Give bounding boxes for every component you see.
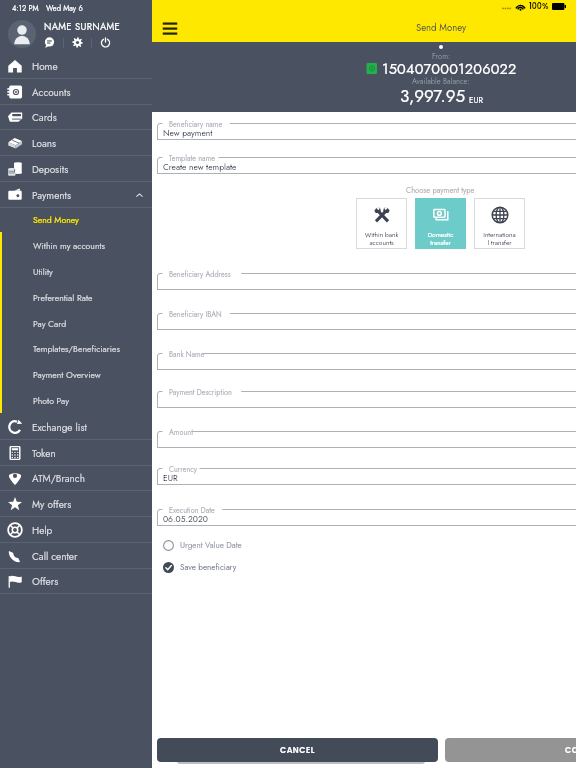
- staticText: Offers: [32, 574, 144, 588]
- staticText: Internationa l transfer: [474, 230, 525, 247]
- staticText: Templates/Beneficiaries: [33, 343, 120, 356]
- staticText: Save beneficiary: [180, 561, 237, 573]
- staticText: EUR: [163, 472, 178, 484]
- staticText: ATM/Branch: [32, 471, 144, 485]
- button[interactable]: Exchange list: [0, 414, 152, 440]
- button[interactable]: Send Money: [0, 207, 152, 233]
- staticText: Photo Pay: [33, 395, 69, 408]
- button[interactable]: Accounts: [0, 79, 152, 105]
- staticText: Preferential Rate: [33, 292, 93, 305]
- staticText: Utility: [33, 266, 53, 279]
- button[interactable]: Open navigation menu: [158, 17, 182, 39]
- button[interactable]: Preferential Rate: [0, 285, 152, 311]
- button[interactable]: Home: [0, 53, 152, 79]
- button[interactable]: Help: [0, 517, 152, 543]
- staticText: Exchange list: [32, 420, 144, 434]
- staticText: Payment Description: [169, 387, 232, 398]
- staticText: 1504070001206022: [382, 58, 517, 79]
- staticText: Currency: [169, 464, 198, 475]
- button[interactable]: Loans: [0, 130, 152, 156]
- staticText: Beneficiary IBAN: [169, 309, 222, 320]
- button[interactable]: Deposits: [0, 156, 152, 182]
- staticText: NAME SURNAME: [44, 20, 121, 34]
- staticText: Accounts: [32, 85, 144, 99]
- staticText: EUR: [469, 94, 483, 106]
- staticText: Payments: [32, 188, 135, 202]
- button[interactable]: ATM/Branch: [0, 465, 152, 491]
- staticText: 3,997.95: [400, 84, 466, 109]
- button[interactable]: CONFIRM: [445, 738, 576, 762]
- staticText: 06.05.2020: [163, 513, 208, 525]
- button[interactable]: Utility: [0, 259, 152, 285]
- button[interactable]: Within my accounts: [0, 233, 152, 259]
- button[interactable]: Token: [0, 440, 152, 466]
- button[interactable]: Save beneficiary: [163, 560, 237, 574]
- staticText: CANCEL: [280, 745, 315, 756]
- staticText: Template name: [169, 153, 215, 164]
- staticText: Payment Overview: [33, 369, 101, 382]
- staticText: Send Money: [33, 214, 79, 227]
- button[interactable]: Templates/Beneficiaries: [0, 336, 152, 362]
- staticText: Help: [32, 523, 144, 537]
- button[interactable]: Call center: [0, 543, 152, 569]
- button[interactable]: Photo Pay: [0, 388, 152, 414]
- button[interactable]: My offers: [0, 491, 152, 517]
- staticText: Within my accounts: [33, 240, 106, 253]
- staticText: Execution Date: [169, 505, 215, 516]
- staticText: Deposits: [32, 162, 144, 176]
- button[interactable]: Domestic transfer: [415, 198, 466, 249]
- staticText: CONFIRM: [565, 745, 576, 756]
- staticText: Wed May 6: [46, 3, 83, 14]
- button[interactable]: Payments: [0, 182, 152, 208]
- staticText: My offers: [32, 497, 144, 511]
- button[interactable]: Offers: [0, 568, 152, 594]
- staticText: Beneficiary Address: [169, 269, 231, 280]
- staticText: Create new template: [163, 161, 237, 173]
- button[interactable]: Cards: [0, 104, 152, 130]
- staticText: Urgent Value Date: [180, 539, 242, 551]
- staticText: From:: [432, 51, 451, 62]
- staticText: Loans: [32, 136, 144, 150]
- staticText: Cards: [32, 110, 144, 124]
- staticText: Choose payment type: [406, 185, 475, 196]
- staticText: Call center: [32, 549, 144, 563]
- staticText: Bank Name: [169, 349, 205, 360]
- staticText: Within bank accounts: [356, 230, 407, 247]
- button[interactable]: Payment Overview: [0, 362, 152, 388]
- button[interactable]: Internationa l transfer: [474, 198, 525, 249]
- staticText: Domestic transfer: [415, 230, 466, 247]
- staticText: Token: [32, 446, 144, 460]
- button[interactable]: Within bank accounts: [356, 198, 407, 249]
- button[interactable]: CANCEL: [157, 738, 438, 762]
- staticText: 100%: [529, 1, 549, 12]
- button[interactable]: Pay Card: [0, 311, 152, 337]
- staticText: Beneficiary name: [169, 119, 223, 130]
- staticText: Home: [32, 59, 144, 73]
- staticText: Send Money: [416, 21, 467, 35]
- staticText: Available Balance:: [412, 76, 470, 87]
- staticText: 4:12 PM: [12, 3, 39, 14]
- staticText: Amount: [169, 427, 193, 438]
- button[interactable]: Urgent Value Date: [163, 538, 242, 552]
- staticText: Pay Card: [33, 318, 67, 331]
- staticText: New payment: [163, 127, 213, 139]
